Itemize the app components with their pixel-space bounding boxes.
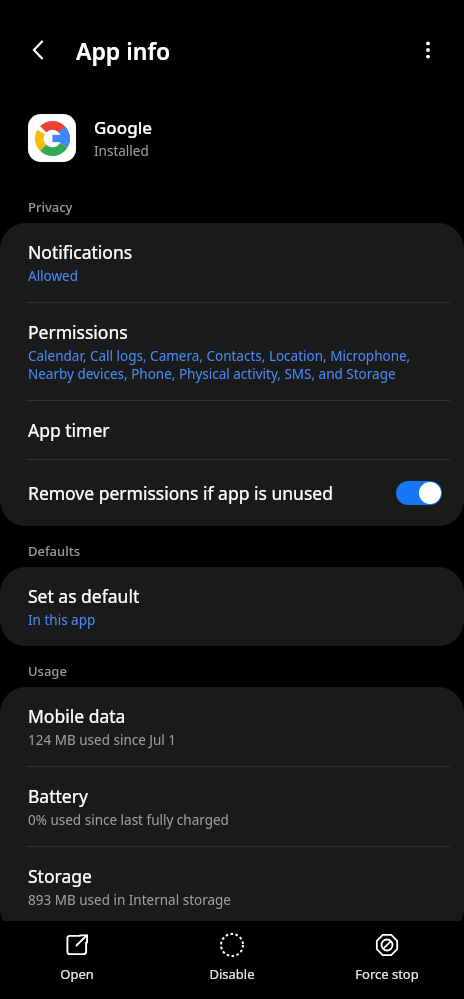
button[interactable]: Mobile data [0,687,464,766]
staticText: Mobile data [28,704,126,728]
staticText: In this app [28,611,96,629]
staticText: Disable [209,965,255,983]
button[interactable]: App timer [0,401,464,459]
button[interactable]: Force stop [309,921,464,999]
staticText: App timer [28,418,110,442]
staticText: Permissions [28,320,128,344]
staticText: App info [76,35,171,66]
other: Disable [220,933,244,957]
staticText: Privacy [28,198,73,216]
button[interactable]: Google [0,100,464,176]
button[interactable]: Storage [0,847,464,926]
other: Open [65,933,89,957]
button[interactable]: Set as default [0,567,464,646]
staticText: 893 MB used in Internal storage [28,891,231,909]
staticText: Allowed [28,267,79,285]
staticText: Notifications [28,240,133,264]
staticText: Installed [94,142,149,160]
button[interactable]: Remove permissions if app is unused [0,460,464,526]
staticText: Remove permissions if app is unused [28,481,396,505]
button[interactable]: Notifications [0,223,464,302]
staticText: Calendar, Call logs, Camera, Contacts, L… [28,347,411,383]
button[interactable]: Permissions [0,303,464,400]
staticText: Storage [28,864,92,888]
staticText: Battery [28,784,88,808]
staticText: Set as default [28,584,140,608]
staticText: Open [60,965,94,983]
staticText: Force stop [355,965,419,983]
staticText: Google [94,116,153,139]
staticText: Defaults [28,542,81,560]
staticText: 0% used since last fully charged [28,811,229,829]
other: Force stop [375,933,399,957]
button[interactable]: Battery [0,767,464,846]
button[interactable]: Disable [154,921,309,999]
button[interactable]: Back [14,26,62,74]
staticText: 124 MB used since Jul 1 [28,731,177,749]
button[interactable]: Open [0,921,154,999]
staticText: Usage [28,662,67,680]
button[interactable]: More options [404,26,452,74]
